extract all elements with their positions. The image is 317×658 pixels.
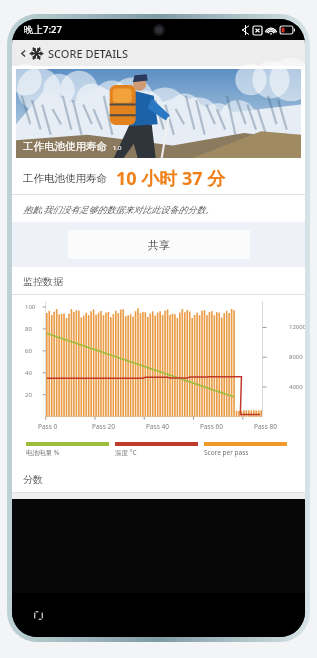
staticText: 电池电量 %	[26, 448, 60, 457]
staticText: 温度 °C	[115, 448, 137, 457]
staticText: 100	[25, 303, 36, 311]
staticText: 40	[25, 369, 32, 377]
staticText: 1.0	[113, 144, 122, 152]
staticText: 监控数据	[23, 275, 63, 288]
other: Back	[19, 49, 28, 58]
staticText: 工作电池使用寿命	[23, 172, 107, 185]
staticText: Pass 40	[146, 422, 169, 431]
staticText: 12000	[289, 323, 305, 331]
staticText: 晚上7:27	[24, 23, 62, 36]
staticText: 工作电池使用寿命	[23, 140, 107, 153]
staticText: 分数	[23, 473, 43, 486]
staticText: Pass 20	[92, 422, 115, 431]
staticText: 20	[25, 391, 32, 399]
staticText: 60	[25, 347, 32, 355]
staticText: SCORE DETAILS	[48, 46, 128, 61]
other: Rotate screen	[34, 611, 43, 620]
staticText: 共享	[148, 238, 170, 252]
staticText: 抱歉,我们没有足够的数据来对比此设备的分数。	[23, 203, 215, 215]
staticText: Pass 0	[38, 422, 58, 431]
staticText: 4000	[289, 383, 303, 391]
staticText: 80	[25, 325, 32, 333]
button[interactable]: 共享	[68, 230, 250, 259]
staticText: 8000	[289, 353, 303, 361]
staticText: 10 小时 37 分	[116, 166, 226, 191]
button[interactable]: Back	[12, 40, 305, 66]
staticText: Pass 60	[200, 422, 223, 431]
staticText: Score per pass	[204, 448, 249, 457]
staticText: Pass 80	[254, 422, 277, 431]
